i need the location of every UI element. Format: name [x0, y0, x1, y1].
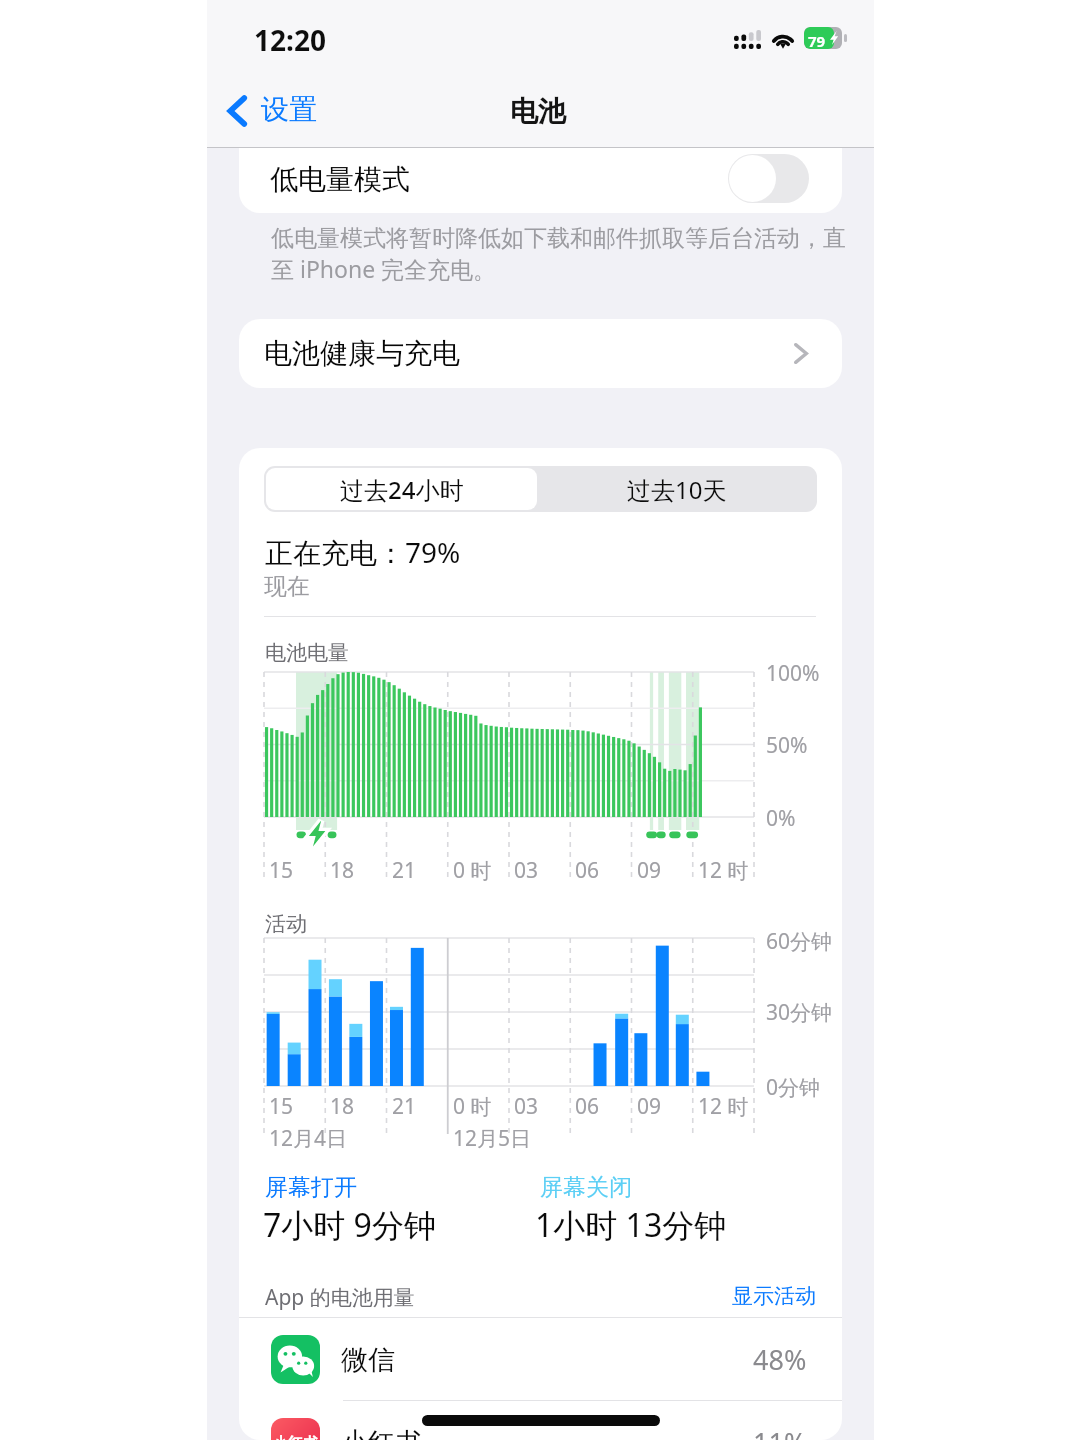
staticText: 7小时 9分钟: [263, 1203, 436, 1247]
staticText: 小红书: [341, 1426, 422, 1440]
staticText: 设置: [261, 92, 317, 127]
button[interactable]: 电池健康与充电: [239, 319, 842, 388]
staticText: 0分钟: [766, 1073, 821, 1102]
staticText: 18: [330, 1092, 355, 1121]
staticText: 06: [575, 1092, 600, 1121]
staticText: 18: [330, 856, 355, 885]
staticText: 09: [637, 1092, 662, 1121]
staticText: 0 时: [453, 856, 492, 885]
staticText: 03: [514, 1092, 539, 1121]
staticText: 低电量模式: [270, 162, 410, 197]
staticText: 12:20: [254, 21, 326, 59]
staticText: 21: [392, 856, 417, 885]
staticText: App 的电池用量: [265, 1283, 415, 1312]
staticText: 12 时: [698, 1092, 749, 1121]
staticText: 12 时: [698, 856, 749, 885]
other: Battery health and charging: [794, 343, 808, 364]
button[interactable]: 显示活动: [732, 1283, 816, 1309]
staticText: 03: [514, 856, 539, 885]
staticText: 1小时 13分钟: [535, 1203, 727, 1247]
staticText: 50%: [766, 731, 808, 760]
staticText: 正在充电：79%: [265, 533, 461, 571]
staticText: 电池: [510, 94, 566, 129]
staticText: 低电量模式将暂时降低如下载和邮件抓取等后台活动，直 至 iPhone 完全充电。: [271, 224, 846, 284]
staticText: 60分钟: [766, 927, 833, 956]
staticText: 15: [269, 856, 294, 885]
staticText: 12月5日: [453, 1124, 532, 1153]
staticText: 79: [808, 31, 826, 49]
staticText: 100%: [766, 659, 820, 688]
button[interactable]: 过去24小时: [266, 468, 537, 510]
staticText: 12月4日: [269, 1124, 348, 1153]
staticText: 0%: [766, 804, 796, 833]
staticText: 48%: [753, 1341, 807, 1378]
staticText: 09: [637, 856, 662, 885]
staticText: 小红书: [273, 1434, 318, 1440]
staticText: 06: [575, 856, 600, 885]
staticText: 屏幕打开: [265, 1173, 357, 1202]
button[interactable]: [728, 154, 809, 203]
staticText: 30分钟: [766, 998, 833, 1027]
staticText: 活动: [265, 911, 307, 937]
staticText: 过去10天: [627, 473, 727, 506]
button[interactable]: 微信: [271, 1318, 807, 1401]
button[interactable]: Back to Settings: [220, 84, 335, 142]
staticText: 屏幕关闭: [540, 1173, 632, 1202]
button[interactable]: 小红书: [271, 1401, 807, 1440]
staticText: 电池健康与充电: [264, 336, 460, 371]
staticText: 电池电量: [265, 640, 349, 666]
staticText: 过去24小时: [340, 473, 464, 506]
staticText: 显示活动: [732, 1283, 816, 1309]
staticText: 0 时: [453, 1092, 492, 1121]
button[interactable]: 低电量模式: [239, 148, 842, 213]
staticText: 15: [269, 1092, 294, 1121]
staticText: 11%: [753, 1424, 807, 1440]
staticText: 现在: [264, 572, 310, 601]
staticText: 微信: [341, 1343, 395, 1377]
button[interactable]: 过去10天: [537, 466, 817, 512]
staticText: 21: [392, 1092, 417, 1121]
